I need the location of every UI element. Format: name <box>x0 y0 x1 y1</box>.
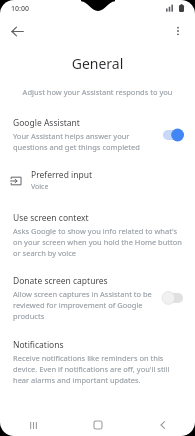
staticText: Your Assistant helps answer your questio… <box>13 131 153 152</box>
staticText: Adjust how your Assistant responds to yo… <box>22 87 173 97</box>
staticText: Receive notifications like reminders on … <box>13 353 185 385</box>
button[interactable]: Recent apps <box>18 414 48 436</box>
button[interactable]: Back <box>4 18 30 44</box>
button[interactable]: Google Assistant <box>0 115 195 154</box>
staticText: Preferred input <box>31 169 93 181</box>
button[interactable]: Home <box>83 414 113 436</box>
button[interactable]: Preferred input <box>0 167 195 194</box>
button[interactable]: Donate screen captures <box>0 273 195 323</box>
button[interactable]: Notifications <box>0 337 195 387</box>
button[interactable]: Toggle on <box>161 127 185 143</box>
staticText: Notifications <box>13 339 64 351</box>
staticText: 10:00 <box>11 4 29 14</box>
button[interactable]: More options <box>165 18 191 44</box>
staticText: Asks Google to show you info related to … <box>13 226 183 258</box>
button[interactable]: Back <box>148 414 178 436</box>
button[interactable]: Use screen context <box>0 210 195 260</box>
staticText: Use screen context <box>13 212 89 224</box>
staticText: Google Assistant <box>13 117 80 129</box>
staticText: Donate screen captures <box>13 275 108 287</box>
staticText: Allow screen captures in Assistant to be… <box>13 289 153 321</box>
button[interactable]: Toggle off <box>161 290 185 306</box>
staticText: General <box>0 54 195 73</box>
staticText: Voice <box>31 182 49 192</box>
